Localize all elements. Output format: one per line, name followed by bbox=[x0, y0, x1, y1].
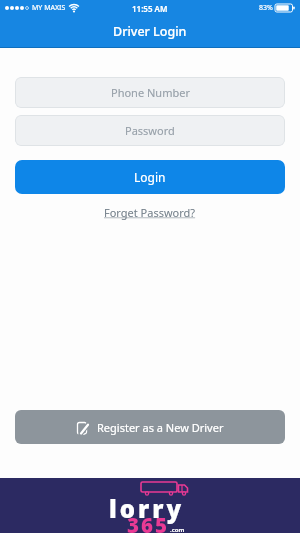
staticText: Login bbox=[134, 169, 166, 185]
button[interactable]: Phone Number bbox=[15, 77, 285, 108]
staticText: 11:55 AM bbox=[132, 3, 168, 14]
staticText: Register as a New Driver bbox=[97, 420, 224, 435]
button[interactable]: Register as a New Driver bbox=[15, 410, 285, 444]
staticText: Phone Number bbox=[111, 85, 190, 100]
button[interactable]: Login bbox=[15, 160, 285, 194]
staticText: 365 bbox=[127, 511, 170, 533]
staticText: lorry bbox=[109, 492, 185, 525]
staticText: .com bbox=[170, 526, 185, 533]
staticText: Driver Login bbox=[113, 23, 187, 40]
button[interactable]: Forget Password? bbox=[100, 201, 200, 224]
button[interactable]: Password bbox=[15, 115, 285, 146]
staticText: Password bbox=[125, 123, 175, 138]
staticText: MY MAXIS bbox=[32, 3, 66, 13]
staticText: 83% bbox=[259, 3, 273, 13]
